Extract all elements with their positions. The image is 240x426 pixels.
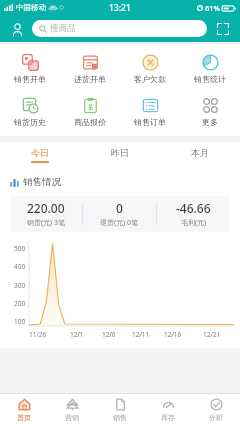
- staticText: 12/11: [132, 330, 150, 339]
- staticText: 毛利(元): [181, 218, 207, 228]
- staticText: 销售开单: [14, 74, 46, 84]
- staticText: 退货(元) 0笔: [100, 218, 139, 228]
- staticText: 销售统计: [194, 74, 226, 84]
- staticText: 本月: [191, 147, 209, 158]
- staticText: 进货开单: [74, 74, 106, 84]
- button[interactable]: 销售开单: [0, 52, 60, 86]
- staticText: 昨日: [111, 147, 129, 158]
- staticText: 销货历史: [14, 117, 46, 127]
- staticText: 销售情况: [23, 176, 61, 188]
- staticText: 今日: [31, 147, 49, 158]
- staticText: 100: [14, 317, 26, 326]
- button[interactable]: 销货历史: [0, 95, 60, 129]
- button[interactable]: 更多: [180, 95, 240, 129]
- staticText: 12/1: [70, 330, 84, 339]
- button[interactable]: Scan: [213, 19, 233, 39]
- staticText: 中国移动: [16, 3, 46, 12]
- staticText: 更多: [202, 117, 218, 127]
- button[interactable]: 销售: [96, 394, 144, 426]
- button[interactable]: 营销: [48, 394, 96, 426]
- button[interactable]: 0: [83, 196, 156, 232]
- button[interactable]: 销售统计: [180, 52, 240, 86]
- staticText: 销货(元) 3笔: [27, 218, 66, 228]
- staticText: 200: [14, 299, 26, 308]
- button[interactable]: 商品报价: [60, 95, 120, 129]
- staticText: 商品报价: [74, 117, 106, 127]
- staticText: 13:21: [109, 2, 131, 14]
- staticText: 分析: [209, 413, 223, 422]
- button[interactable]: 客户欠款: [120, 52, 180, 86]
- staticText: 61%: [205, 3, 220, 13]
- staticText: -46.66: [176, 200, 211, 216]
- staticText: 营销: [65, 413, 79, 422]
- staticText: 12/21: [203, 330, 221, 339]
- staticText: 销售订单: [134, 117, 166, 127]
- staticText: 300: [14, 281, 26, 290]
- staticText: 库存: [161, 413, 175, 422]
- staticText: 搜商品: [50, 23, 76, 34]
- staticText: 12/16: [164, 330, 182, 339]
- staticText: 220.00: [27, 200, 65, 216]
- staticText: 0: [116, 200, 123, 216]
- staticText: 首页: [17, 413, 31, 422]
- button[interactable]: 首页: [0, 394, 48, 426]
- button[interactable]: -46.66: [157, 196, 230, 232]
- staticText: 客户欠款: [134, 74, 166, 84]
- button[interactable]: 进货开单: [60, 52, 120, 86]
- button[interactable]: 昨日: [80, 142, 160, 168]
- staticText: 11/26: [29, 330, 47, 339]
- staticText: 500: [14, 244, 26, 253]
- button[interactable]: 库存: [144, 394, 192, 426]
- button[interactable]: 220.00: [10, 196, 82, 232]
- button[interactable]: 搜商品: [32, 20, 207, 37]
- staticText: 销售: [113, 413, 127, 422]
- button[interactable]: Profile: [7, 19, 27, 39]
- button[interactable]: 今日: [0, 142, 80, 168]
- button[interactable]: 销售订单: [120, 95, 180, 129]
- staticText: 12/6: [102, 330, 116, 339]
- button[interactable]: 本月: [160, 142, 240, 168]
- staticText: 400: [14, 262, 26, 271]
- button[interactable]: 分析: [192, 394, 240, 426]
